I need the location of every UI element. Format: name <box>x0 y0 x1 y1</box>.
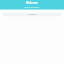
button[interactable]: continue <box>3 13 61 16</box>
staticText: continue <box>3 13 61 16</box>
staticText: tap to continue <box>0 6 64 9</box>
staticText: Welcome <box>0 1 64 5</box>
